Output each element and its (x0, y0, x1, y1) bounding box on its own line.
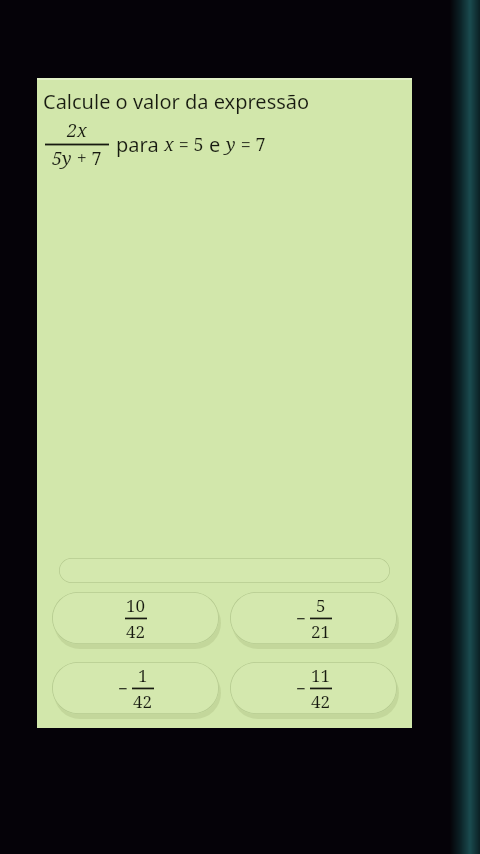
staticText: − (296, 607, 306, 630)
staticText: para (116, 131, 164, 158)
staticText: − (296, 677, 306, 700)
staticText: 5 (316, 594, 326, 617)
button[interactable]: 10 sobre 42 (52, 592, 219, 644)
staticText: 21 (311, 620, 331, 643)
staticText: x (164, 132, 174, 157)
staticText: = 5 (174, 132, 209, 157)
staticText: 10 (126, 594, 146, 617)
staticText: − (118, 677, 128, 700)
button[interactable]: Campo de resposta (59, 558, 390, 583)
staticText: 42 (311, 690, 331, 713)
staticText: 2x (67, 118, 87, 143)
button[interactable]: menos 1 sobre 42 (52, 662, 219, 714)
staticText: + 7 (72, 146, 102, 171)
staticText: 11 (311, 664, 331, 687)
staticText: e (209, 131, 226, 158)
button[interactable]: menos 11 sobre 42 (230, 662, 397, 714)
staticText: 1 (138, 664, 148, 687)
staticText: 42 (126, 620, 146, 643)
staticText: = 7 (236, 132, 266, 157)
staticText: y (226, 132, 236, 157)
staticText: 42 (133, 690, 153, 713)
staticText: Calcule o valor da expressão (43, 88, 310, 115)
staticText: 5y (52, 146, 72, 171)
button[interactable]: menos 5 sobre 21 (230, 592, 397, 644)
